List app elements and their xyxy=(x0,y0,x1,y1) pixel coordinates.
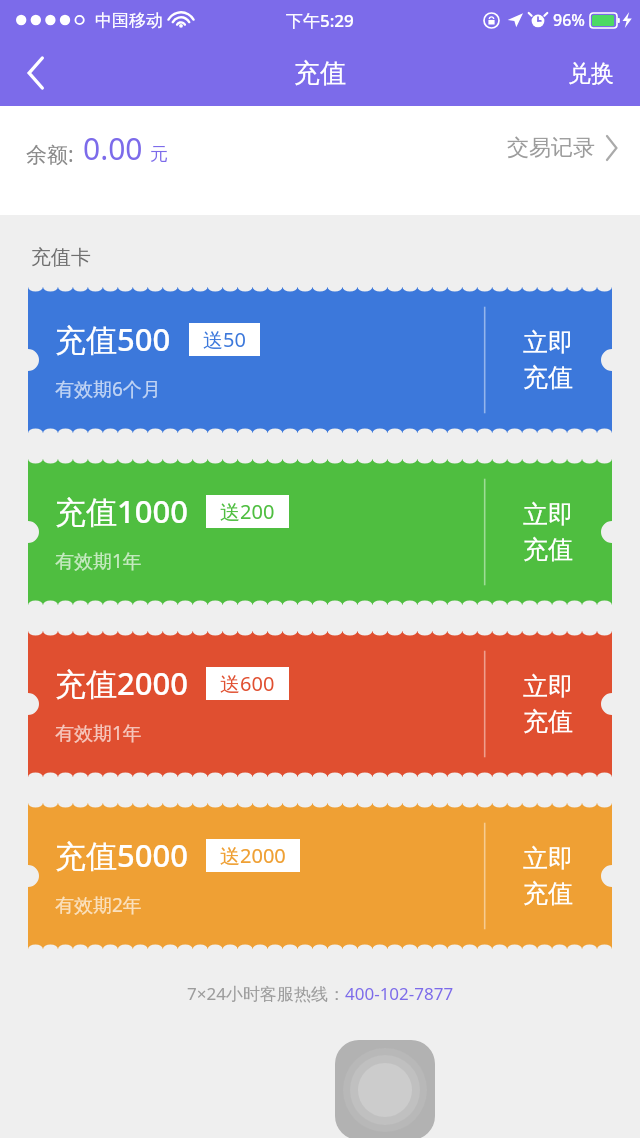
staticText: 7×24小时客服热线： xyxy=(187,982,345,1005)
button[interactable]: 充值5000 xyxy=(28,803,612,949)
staticText: 立即 xyxy=(523,499,573,530)
button[interactable]: 立即 xyxy=(484,487,612,577)
staticText: 送600 xyxy=(220,670,275,697)
staticText: 充值 xyxy=(294,57,346,90)
staticText: 96% xyxy=(553,9,585,31)
staticText: 中国移动 xyxy=(95,10,163,31)
staticText: 送50 xyxy=(203,326,246,353)
button[interactable]: 充值2000 xyxy=(28,631,612,777)
staticText: 充值 xyxy=(523,534,573,565)
other: AssistiveTouch xyxy=(335,1040,435,1138)
button[interactable]: 充值1000 xyxy=(28,459,612,605)
button[interactable]: Back xyxy=(0,40,72,106)
staticText: 充值 xyxy=(523,706,573,737)
staticText: 充值 xyxy=(523,878,573,909)
staticText: 充值1000 xyxy=(55,490,188,532)
staticText: 充值5000 xyxy=(55,834,188,876)
staticText: 兑换 xyxy=(568,59,614,88)
staticText: 充值卡 xyxy=(31,245,91,270)
staticText: 余额: xyxy=(26,140,74,169)
staticText: 立即 xyxy=(523,671,573,702)
staticText: 下午5:29 xyxy=(286,9,354,32)
button[interactable]: 立即 xyxy=(484,659,612,749)
staticText: 有效期6个月 xyxy=(55,376,161,402)
staticText: 有效期1年 xyxy=(55,720,142,746)
staticText: 充值 xyxy=(523,362,573,393)
button[interactable]: 充值500 xyxy=(28,287,612,433)
button[interactable]: 兑换 xyxy=(542,40,640,106)
button[interactable]: 交易记录 xyxy=(503,130,622,166)
staticText: 立即 xyxy=(523,843,573,874)
staticText: 送200 xyxy=(220,498,275,525)
staticText: 交易记录 xyxy=(507,134,595,162)
staticText: 立即 xyxy=(523,327,573,358)
button[interactable]: 立即 xyxy=(484,831,612,921)
staticText: 有效期1年 xyxy=(55,548,142,574)
staticText: 送2000 xyxy=(220,842,286,869)
staticText: 充值500 xyxy=(55,318,171,360)
staticText: 充值2000 xyxy=(55,662,188,704)
staticText: 元 xyxy=(150,143,168,166)
staticText: 0.00 xyxy=(83,128,143,169)
button[interactable]: 400-102-7877 xyxy=(345,982,454,1005)
button[interactable]: 立即 xyxy=(484,315,612,405)
staticText: 有效期2年 xyxy=(55,892,142,918)
